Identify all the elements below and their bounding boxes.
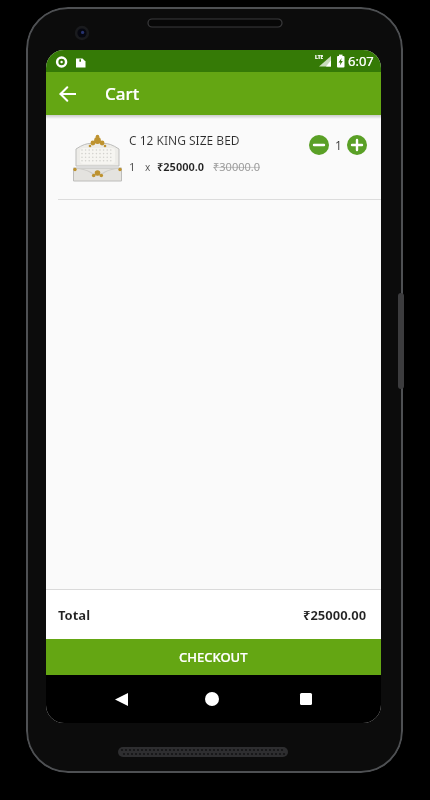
staticText: x <box>145 160 151 174</box>
staticText: ₹25000.00 <box>303 606 367 624</box>
staticText: ₹25000.0 <box>157 159 205 174</box>
staticText: ₹30000.0 <box>213 159 260 174</box>
button[interactable] <box>46 72 89 115</box>
staticText: Total <box>58 606 91 624</box>
staticText: 1 <box>129 159 136 174</box>
button[interactable] <box>97 675 145 723</box>
staticText: 1 <box>335 137 342 153</box>
button[interactable] <box>282 675 330 723</box>
staticText: C 12 KING SIZE BED <box>129 132 240 148</box>
button[interactable]: C 12 KING SIZE BED <box>46 115 381 199</box>
staticText: CHECKOUT <box>179 648 248 666</box>
button[interactable] <box>347 135 367 155</box>
staticText: 6:07 <box>348 52 374 70</box>
button[interactable] <box>188 675 236 723</box>
staticText: LTE <box>315 54 324 61</box>
staticText: Cart <box>105 82 140 105</box>
button[interactable]: CHECKOUT <box>46 639 381 675</box>
button[interactable] <box>309 135 329 155</box>
